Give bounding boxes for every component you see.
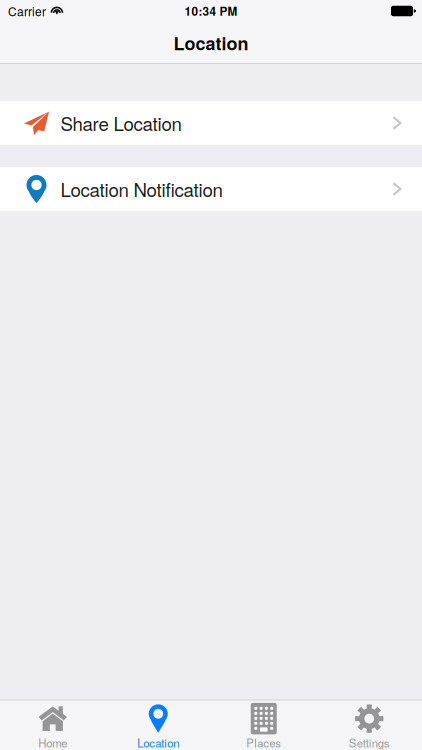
staticText: Carrier [8,2,46,20]
staticText: Home [38,734,67,750]
staticText: Settings [349,734,390,750]
button[interactable]: Settings [316,699,422,750]
button[interactable]: Location Notification [0,167,422,211]
button[interactable]: Places [211,699,316,750]
button[interactable]: Home [0,699,105,750]
staticText: Location Notification [60,176,222,202]
staticText: Places [246,734,281,750]
staticText: Location [137,734,179,750]
button[interactable]: Share Location [0,101,422,145]
staticText: 10:34 PM [184,3,237,19]
button[interactable]: Location [105,699,211,750]
staticText: Location [173,30,248,56]
staticText: Share Location [60,110,181,136]
